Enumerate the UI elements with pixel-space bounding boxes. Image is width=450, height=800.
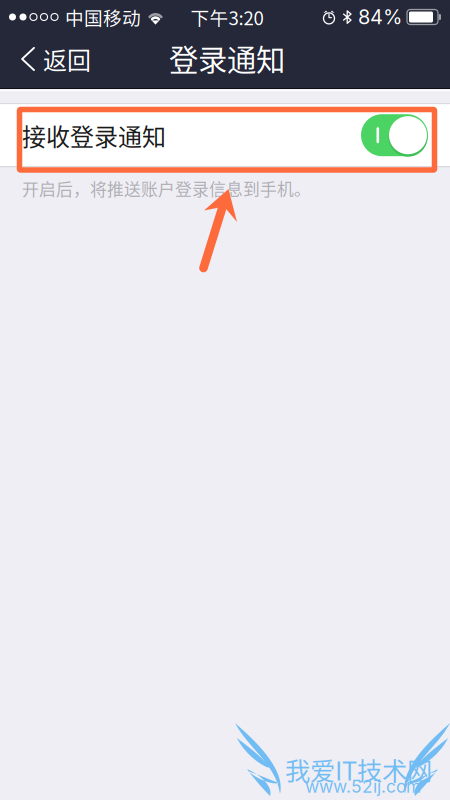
staticText: www.52ij.com [305, 776, 421, 797]
button[interactable]: 返回 [0, 34, 107, 88]
staticText: 接收登录通知 [22, 118, 166, 153]
staticText: 我爱IT技术网 [285, 751, 432, 788]
staticText: 登录通知 [169, 37, 285, 79]
button[interactable]: 接收登录通知 [0, 104, 450, 166]
staticText: 返回 [43, 42, 91, 76]
staticText: 84% [358, 5, 402, 29]
staticText: 下午3:20 [190, 3, 263, 30]
staticText: 中国移动 [65, 3, 141, 30]
staticText: 开启后，将推送账户登录信息到手机。 [22, 176, 311, 200]
